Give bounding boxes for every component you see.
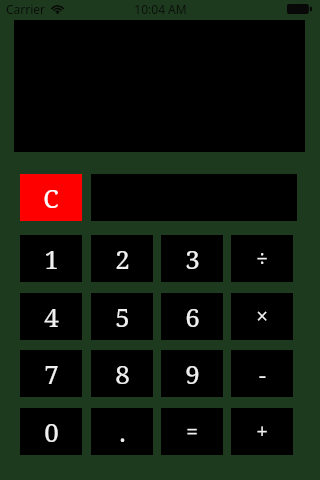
button[interactable]: C (20, 174, 82, 221)
staticText: 3 (185, 241, 200, 276)
button[interactable]: 3 (161, 235, 223, 282)
staticText: × (256, 302, 268, 331)
staticText: + (256, 417, 268, 446)
staticText: = (186, 417, 198, 446)
staticText: 9 (185, 356, 200, 391)
staticText: 1 (44, 241, 59, 276)
button[interactable]: 6 (161, 293, 223, 340)
staticText: 8 (115, 356, 130, 391)
staticText: ÷ (256, 244, 268, 273)
staticText: 4 (44, 299, 59, 334)
button[interactable]: Add (231, 408, 293, 455)
staticText: 10:04 AM (134, 1, 187, 17)
button[interactable]: Decimal point (91, 408, 153, 455)
button[interactable]: 0 (20, 408, 82, 455)
button[interactable]: 9 (161, 350, 223, 397)
staticText: 5 (115, 299, 130, 334)
staticText: Carrier (6, 1, 46, 17)
button[interactable]: 8 (91, 350, 153, 397)
staticText: 6 (185, 299, 200, 334)
button[interactable]: Multiply (231, 293, 293, 340)
staticText: 7 (44, 356, 59, 391)
button[interactable]: Equals (161, 408, 223, 455)
button[interactable]: 1 (20, 235, 82, 282)
staticText: C (43, 181, 59, 215)
button[interactable]: 5 (91, 293, 153, 340)
staticText: . (119, 414, 126, 449)
button[interactable]: 4 (20, 293, 82, 340)
button[interactable]: Divide (231, 235, 293, 282)
button[interactable]: Subtract (231, 350, 293, 397)
staticText: 0 (44, 414, 59, 449)
staticText: - (259, 359, 266, 389)
staticText: 2 (115, 241, 130, 276)
button[interactable]: 7 (20, 350, 82, 397)
button[interactable]: 2 (91, 235, 153, 282)
